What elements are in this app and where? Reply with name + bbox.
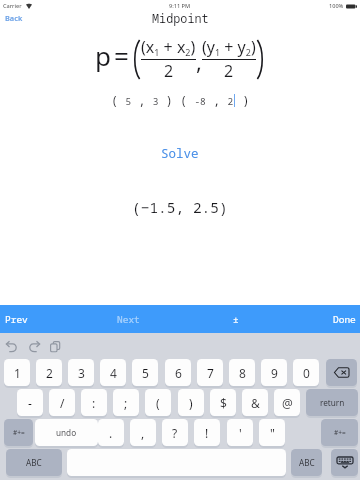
button[interactable]: ) <box>178 389 204 416</box>
staticText: ( <box>156 395 160 411</box>
button[interactable]: ± <box>223 308 249 331</box>
button[interactable]: - <box>17 389 43 416</box>
staticText: 8 <box>239 365 246 381</box>
staticText: , <box>141 425 145 441</box>
button[interactable]: ? <box>162 419 188 446</box>
staticText: & <box>251 395 260 411</box>
button[interactable]: , <box>130 419 156 446</box>
staticText: Solve <box>161 145 199 162</box>
other: Hide keyboard <box>337 457 353 468</box>
staticText: 5 <box>142 365 149 381</box>
button[interactable]: undo <box>35 419 98 446</box>
staticText: $ <box>220 395 227 411</box>
staticText: ! <box>205 425 209 441</box>
staticText: 3 <box>78 365 85 381</box>
button[interactable]: " <box>259 419 285 446</box>
staticText: 6 <box>175 365 182 381</box>
button[interactable]: ! <box>194 419 220 446</box>
button[interactable]: Redo <box>26 333 42 359</box>
button[interactable]: 7 <box>197 359 223 386</box>
staticText: (y1 + y2) <box>202 36 256 59</box>
staticText: #+= <box>334 428 346 437</box>
staticText: (−1.5, 2.5) <box>132 197 228 217</box>
staticText: 0 <box>303 365 310 381</box>
staticText: 2 <box>224 60 234 82</box>
button[interactable]: 2 <box>36 359 62 386</box>
button[interactable]: 6 <box>165 359 191 386</box>
staticText: ; <box>124 395 128 411</box>
staticText: 9 <box>271 365 278 381</box>
staticText: p <box>95 38 111 73</box>
button[interactable]: ; <box>113 389 139 416</box>
staticText: ) <box>189 395 193 411</box>
staticText: , <box>196 46 202 76</box>
button[interactable]: Back <box>0 10 33 26</box>
button[interactable]: 5 <box>132 359 158 386</box>
staticText: Done <box>333 313 356 326</box>
staticText: 9:11 PM <box>169 2 191 10</box>
button[interactable]: Undo <box>3 333 19 359</box>
staticText: 100% <box>329 2 344 10</box>
button[interactable]: & <box>242 389 268 416</box>
staticText: Midpoint <box>152 10 209 26</box>
button[interactable]: Done <box>323 308 360 331</box>
button[interactable]: $ <box>210 389 236 416</box>
staticText: return <box>320 397 345 408</box>
staticText: ( 5 , 3 ) ( -8 , 2 <box>111 92 234 108</box>
staticText: (x1 + x2) <box>141 36 196 59</box>
staticText: Prev <box>5 313 28 326</box>
staticText: ? <box>172 425 178 441</box>
button[interactable]: 8 <box>229 359 255 386</box>
button[interactable]: 4 <box>100 359 126 386</box>
staticText: undo <box>56 427 77 438</box>
staticText: " <box>270 425 275 441</box>
button[interactable]: 9 <box>261 359 287 386</box>
staticText: ABC <box>299 457 315 468</box>
button[interactable]: #+= <box>321 419 358 446</box>
button[interactable]: #+= <box>4 419 33 446</box>
button[interactable]: Solve <box>151 142 209 165</box>
button[interactable]: ( <box>145 389 171 416</box>
staticText: - <box>28 395 32 411</box>
button[interactable]: 1 <box>4 359 30 386</box>
button[interactable]: 3 <box>68 359 94 386</box>
button[interactable]: Hide keyboard <box>331 449 358 476</box>
staticText: = <box>114 38 129 73</box>
staticText: ) <box>235 92 250 108</box>
button[interactable]: 0 <box>293 359 319 386</box>
staticText: / <box>60 395 65 411</box>
staticText: 4 <box>110 365 117 381</box>
staticText: Back <box>5 13 23 23</box>
staticText: 7 <box>207 365 214 381</box>
button[interactable]: Prev <box>0 308 38 331</box>
button[interactable]: . <box>98 419 124 446</box>
other: Backspace <box>334 367 349 378</box>
button[interactable]: Paste <box>47 333 63 359</box>
button[interactable]: / <box>49 389 75 416</box>
staticText: 1 <box>14 365 21 381</box>
button[interactable]: ABC <box>6 449 62 476</box>
button[interactable]: Backspace <box>326 359 357 386</box>
staticText: . <box>109 425 113 441</box>
staticText: 2 <box>164 60 174 82</box>
staticText: @ <box>282 395 293 411</box>
staticText: 2 <box>46 365 53 381</box>
staticText: ABC <box>26 457 42 468</box>
button[interactable]: @ <box>274 389 300 416</box>
staticText: Carrier <box>3 2 22 10</box>
staticText: : <box>92 395 96 411</box>
staticText: ± <box>233 313 239 326</box>
button[interactable]: : <box>81 389 107 416</box>
staticText: #+= <box>13 428 25 437</box>
button[interactable]: return <box>306 389 358 416</box>
button[interactable]: Next <box>107 308 150 331</box>
staticText: Next <box>117 313 140 326</box>
staticText: ' <box>239 425 242 441</box>
button[interactable]: ABC <box>291 449 322 476</box>
button[interactable]: ' <box>227 419 253 446</box>
